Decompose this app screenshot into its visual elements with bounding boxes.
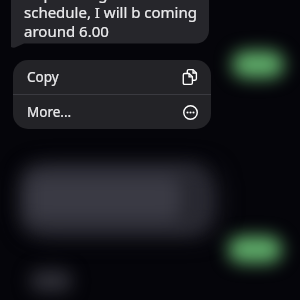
button[interactable]: Copy: [13, 60, 211, 94]
staticText: as per the given schedule, I will b comi…: [24, 0, 197, 41]
other: More options: [183, 105, 198, 120]
other: Copy: [182, 69, 198, 85]
staticText: More...: [27, 103, 72, 121]
staticText: Copy: [27, 68, 59, 86]
button[interactable]: More...: [13, 95, 211, 129]
